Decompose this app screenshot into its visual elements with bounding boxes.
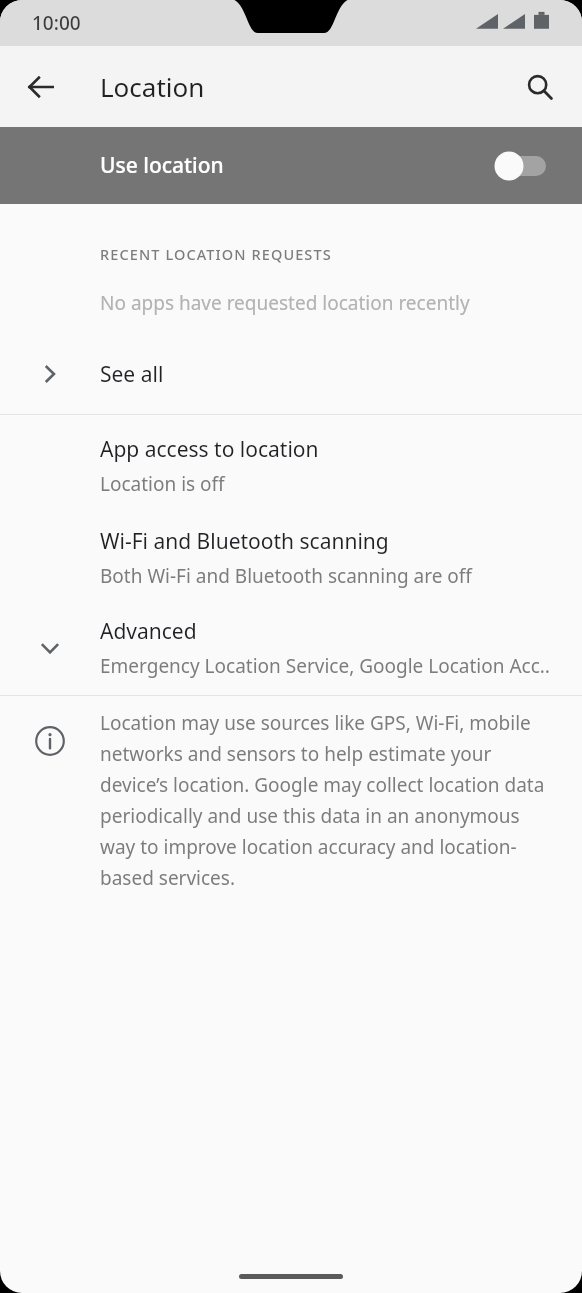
- staticText: Both Wi-Fi and Bluetooth scanning are of…: [100, 563, 472, 589]
- button[interactable]: App access to location: [0, 435, 582, 497]
- staticText: Use location: [100, 151, 224, 180]
- button[interactable]: See all: [0, 348, 582, 400]
- button[interactable]: Back: [12, 58, 70, 116]
- staticText: 10:00: [32, 10, 81, 36]
- button[interactable]: Search: [512, 59, 568, 115]
- staticText: Wi-Fi and Bluetooth scanning: [100, 527, 389, 556]
- staticText: App access to location: [100, 435, 319, 464]
- button[interactable]: Wi-Fi and Bluetooth scanning: [0, 527, 582, 589]
- button[interactable]: Advanced: [0, 617, 582, 679]
- staticText: Location: [100, 69, 205, 104]
- staticText: Emergency Location Service, Google Locat…: [100, 653, 550, 679]
- staticText: No apps have requested location recently: [100, 290, 470, 316]
- staticText: Location may use sources like GPS, Wi-Fi…: [100, 710, 548, 891]
- staticText: Location is off: [100, 471, 225, 497]
- button[interactable]: Use location: [0, 127, 582, 204]
- staticText: Advanced: [100, 617, 197, 646]
- staticText: See all: [100, 360, 164, 389]
- staticText: RECENT LOCATION REQUESTS: [100, 244, 332, 264]
